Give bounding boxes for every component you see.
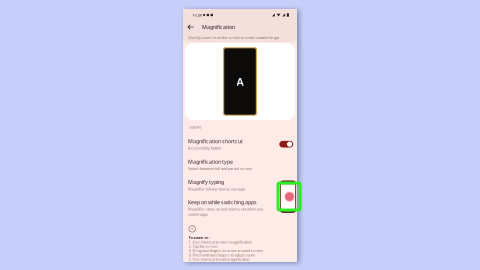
staticText: Magnification type [188,158,233,165]
staticText: Accessibility button [188,145,221,151]
staticText: 4. Pinch with two fingers to adjust zoom [188,252,255,257]
staticText: Magnification shortcut [188,138,243,145]
button[interactable]: Magnification shortcut, on [279,140,293,148]
staticText: To zoom in: [188,235,209,240]
button[interactable]: Magnification shortcut [183,134,297,154]
staticText: Keep on while switching apps [188,198,257,206]
button[interactable]: Magnification type [183,154,297,175]
staticText: Options [188,124,201,130]
staticText: Magnifier follows text as you type [188,186,245,191]
staticText: Switch between full and partial screen [188,166,252,171]
staticText: 3. Drag two fingers to move around scree… [188,248,262,253]
staticText: Magnifier stays on and zooms out when yo… [188,206,263,217]
staticText: Magnification [202,23,235,31]
staticText: A [236,74,243,89]
button[interactable]: Magnify typing [183,175,297,195]
staticText: 5. Use shortcut to end magnification [188,256,249,262]
staticText: Magnify typing [188,178,224,186]
staticText: 2. Tap the screen [188,244,217,249]
button[interactable]: Back [183,21,198,33]
staticText: 17:24 [192,12,201,18]
staticText: Quickly zoom in on the screen to make co… [188,35,280,40]
button[interactable]: Keep on while switching apps [183,195,297,220]
staticText: 1. Use shortcut to start magnification [188,239,251,245]
